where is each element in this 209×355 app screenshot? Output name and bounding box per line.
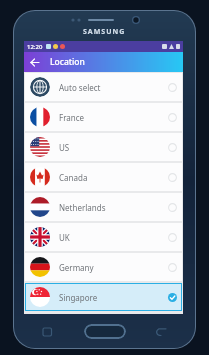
- staticText: Auto select: [59, 82, 101, 93]
- staticText: France: [59, 112, 85, 123]
- staticText: Germany: [59, 262, 94, 273]
- staticText: Location: [50, 56, 85, 68]
- button[interactable]: Back: [24, 52, 44, 72]
- button[interactable]: Netherlands: [25, 193, 182, 221]
- staticText: Netherlands: [59, 202, 106, 213]
- button[interactable]: US: [25, 133, 182, 161]
- button[interactable]: Germany: [25, 253, 182, 281]
- staticText: 12:20: [27, 43, 43, 51]
- staticText: UK: [59, 232, 70, 243]
- button[interactable]: France: [25, 103, 182, 131]
- button[interactable]: UK: [25, 223, 182, 251]
- button[interactable]: Home: [84, 324, 126, 339]
- staticText: SAMSUNG: [83, 27, 126, 37]
- button[interactable]: Canada: [25, 163, 182, 191]
- button[interactable]: Auto select: [25, 73, 182, 101]
- staticText: Singapore: [59, 292, 98, 303]
- button[interactable]: Recents: [41, 325, 55, 339]
- staticText: Canada: [59, 172, 88, 183]
- button[interactable]: Back: [154, 325, 168, 339]
- staticText: US: [59, 142, 70, 153]
- button[interactable]: Singapore: [25, 283, 182, 311]
